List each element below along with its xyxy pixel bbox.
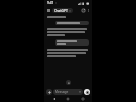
button[interactable]: Voice mode [84, 89, 90, 95]
staticText: 9:41 [47, 1, 54, 5]
button[interactable] [55, 39, 89, 46]
button[interactable] [47, 49, 89, 57]
button[interactable] [47, 28, 89, 36]
button[interactable]: More options [86, 8, 90, 12]
button[interactable]: Home [63, 96, 73, 102]
button[interactable] [55, 21, 89, 25]
button[interactable]: Message [53, 89, 83, 95]
staticText: Message [55, 90, 69, 94]
button[interactable]: New chat [81, 8, 86, 13]
button[interactable]: Scroll to bottom [66, 80, 71, 85]
button[interactable]: ChatGPT [52, 8, 73, 13]
staticText: ChatGPT [54, 8, 68, 13]
button[interactable]: Back [49, 96, 59, 102]
button[interactable]: Recent apps [78, 96, 88, 102]
button[interactable]: Menu [46, 8, 51, 13]
button[interactable]: Add attachment [46, 89, 52, 95]
